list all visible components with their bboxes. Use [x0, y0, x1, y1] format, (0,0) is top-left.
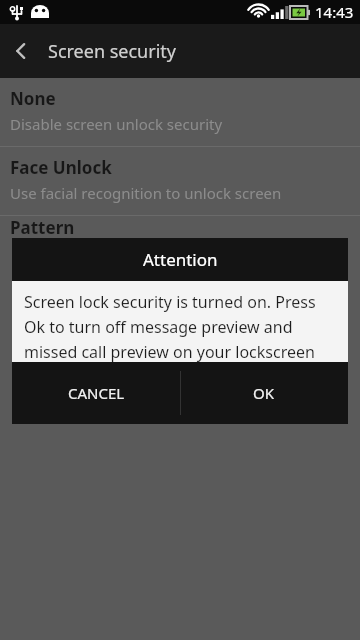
button[interactable]: OK — [180, 362, 348, 424]
staticText: 14:43 — [315, 2, 354, 22]
staticText: Attention — [143, 248, 218, 271]
staticText: CANCEL — [68, 383, 125, 403]
staticText: Use facial recognition to unlock screen — [10, 183, 282, 203]
staticText: Face Unlock — [10, 156, 112, 179]
staticText: Pattern — [10, 216, 75, 239]
button[interactable]: None — [0, 78, 360, 146]
staticText: Screen security — [48, 39, 176, 64]
staticText: Disable screen unlock security — [10, 114, 223, 134]
button[interactable]: Face Unlock — [0, 147, 360, 215]
staticText: missed call preview on your lockscreen — [24, 341, 315, 362]
button[interactable]: Back — [0, 29, 44, 73]
staticText: Ok to turn off message preview and — [24, 316, 293, 338]
staticText: None — [10, 87, 56, 110]
button[interactable]: CANCEL — [12, 362, 180, 424]
staticText: Screen lock security is turned on. Press — [24, 291, 316, 313]
staticText: OK — [253, 383, 275, 403]
